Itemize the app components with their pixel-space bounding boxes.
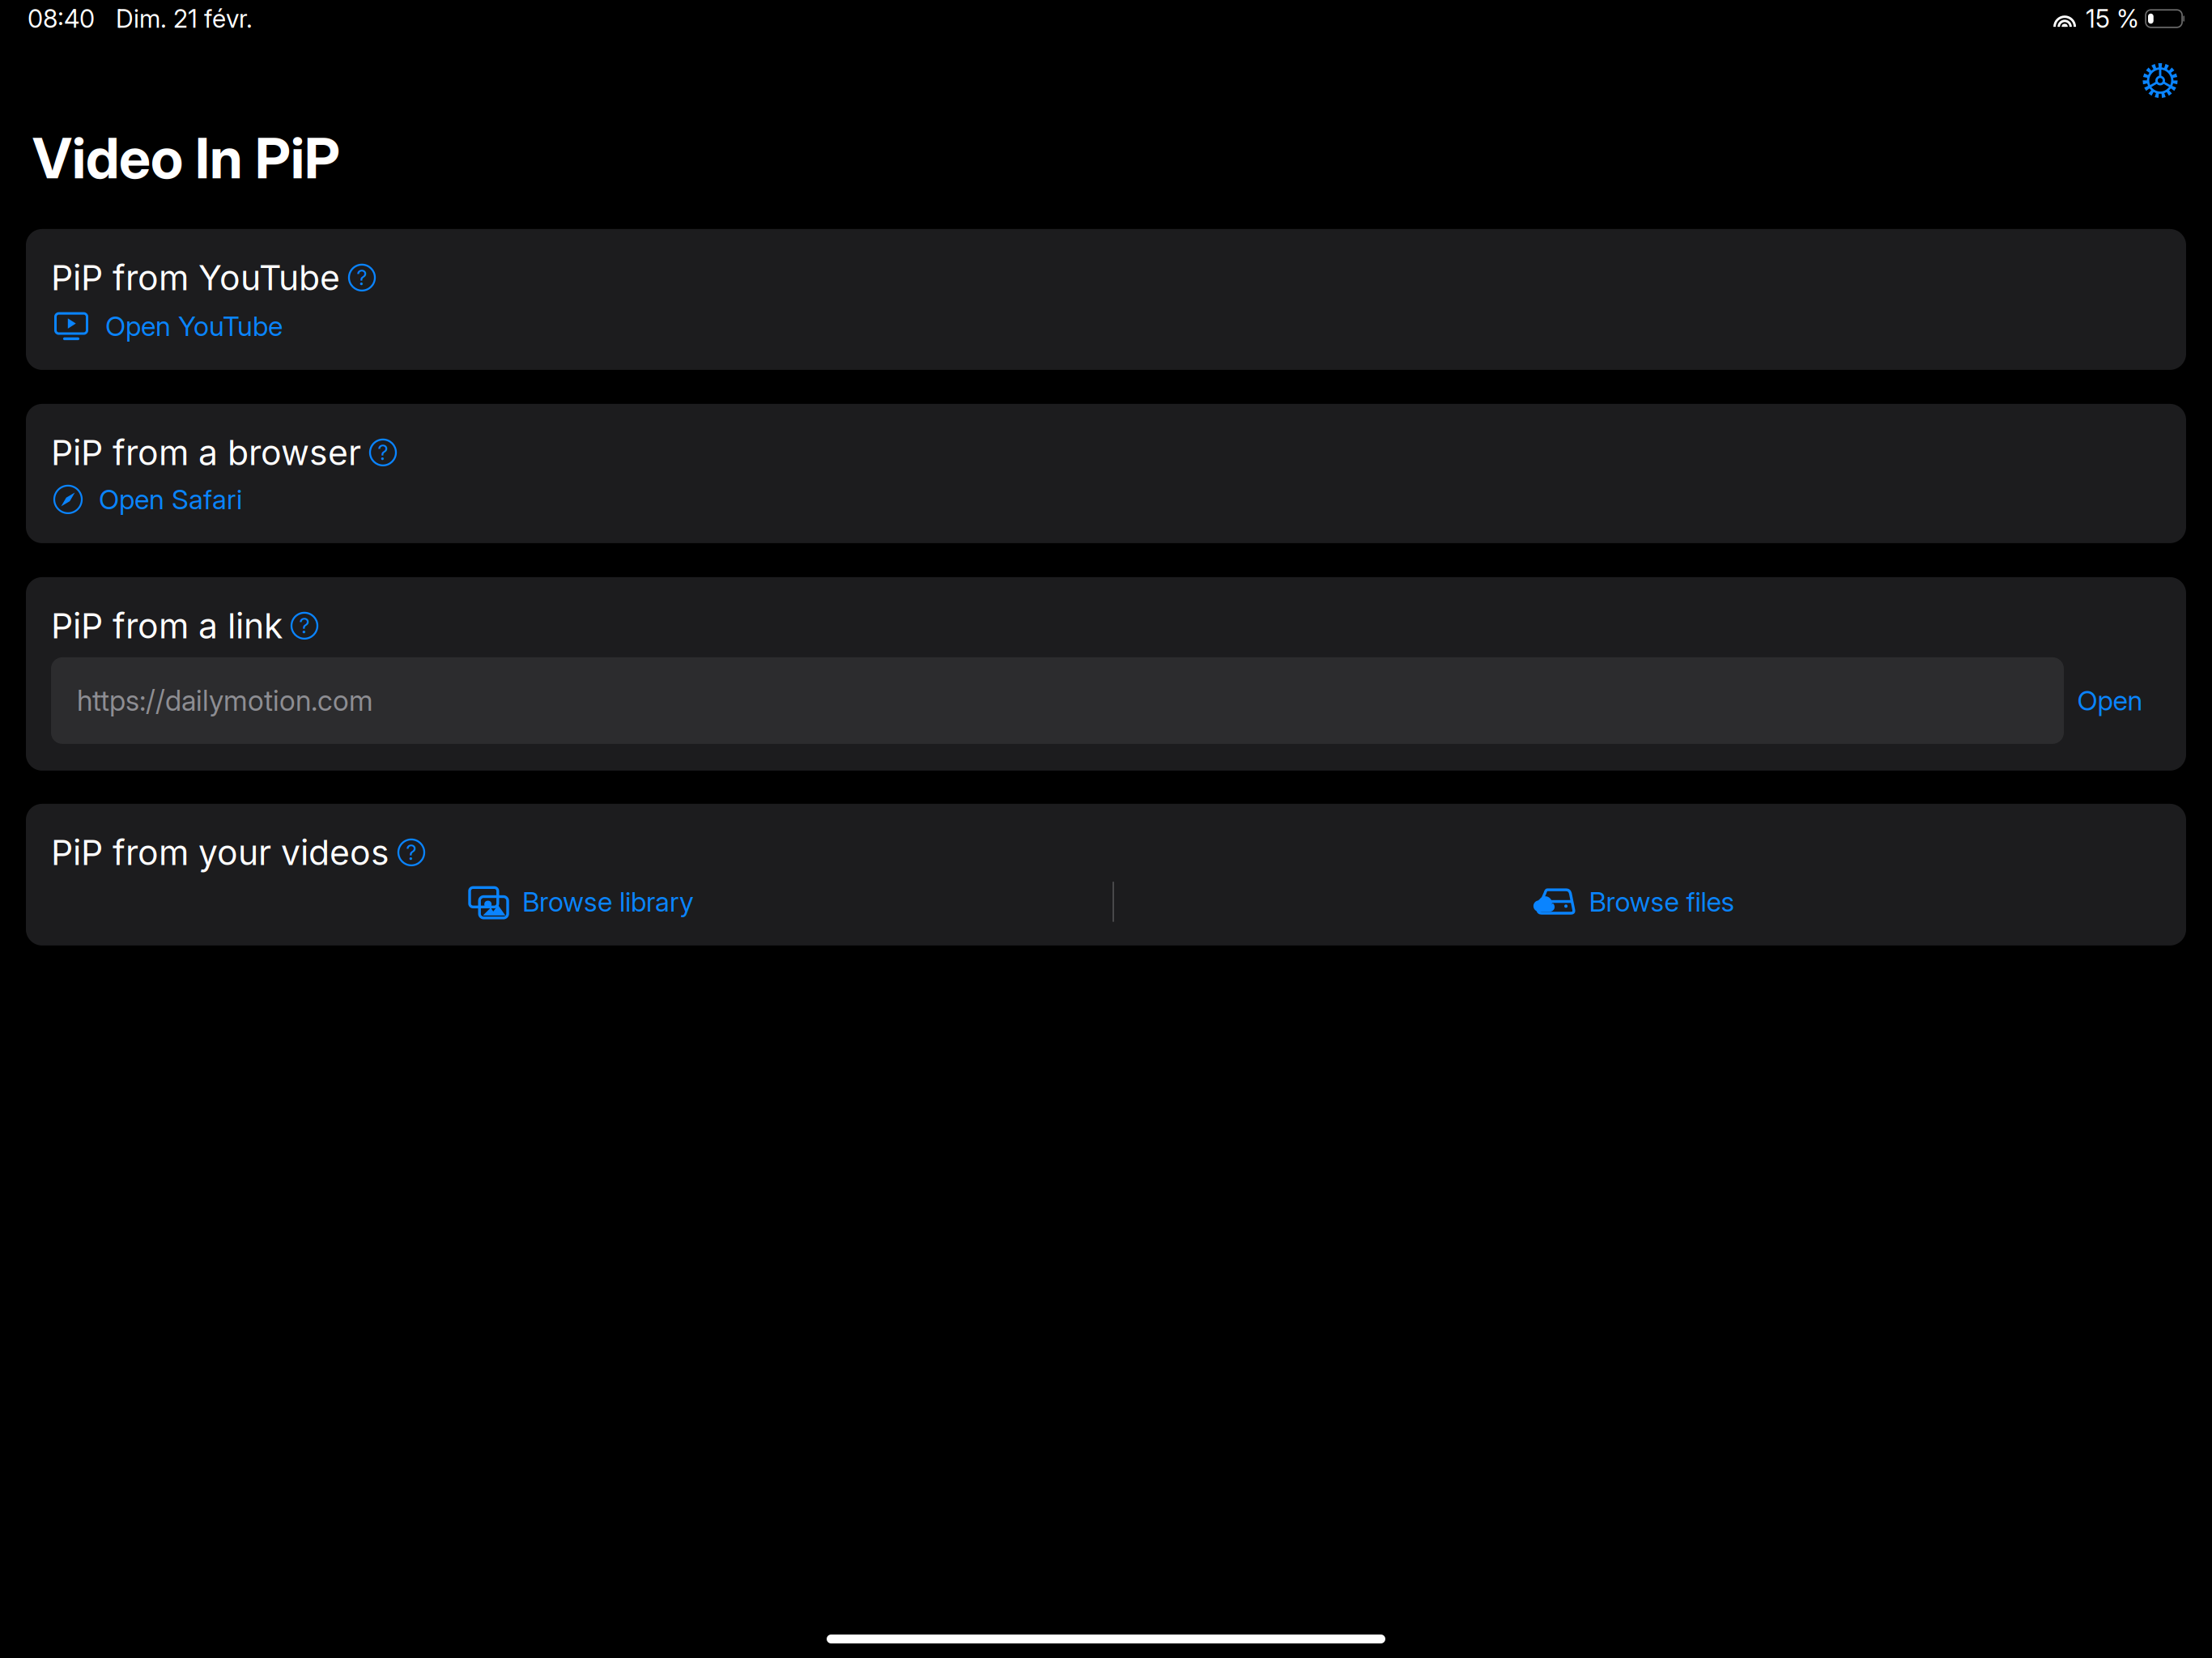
staticText: 08:40 xyxy=(28,4,95,34)
button[interactable]: Open Safari xyxy=(51,481,242,518)
staticText: PiP from your videos xyxy=(51,832,389,873)
button[interactable]: Browse library xyxy=(51,878,1112,925)
staticText: PiP from YouTube xyxy=(51,257,340,298)
staticText: Video In PiP xyxy=(32,124,340,192)
staticText: ? xyxy=(299,613,310,638)
staticText: Open Safari xyxy=(99,483,242,516)
button[interactable]: Browse files xyxy=(1114,878,2156,925)
staticText: ? xyxy=(357,265,367,290)
button[interactable]: Settings xyxy=(2125,45,2196,116)
staticText: https://dailymotion.com xyxy=(77,684,373,718)
staticText: Open YouTube xyxy=(105,310,283,342)
staticText: ? xyxy=(406,840,417,865)
staticText: PiP from a browser xyxy=(51,432,361,473)
staticText: Browse files xyxy=(1589,885,1735,918)
button[interactable]: Open xyxy=(2064,657,2156,744)
staticText: Browse library xyxy=(522,885,694,918)
staticText: 15 % xyxy=(2086,4,2139,34)
staticText: PiP from a link xyxy=(51,605,283,647)
staticText: Open xyxy=(2077,684,2143,717)
staticText: Dim. 21 févr. xyxy=(116,4,253,34)
staticText: ? xyxy=(378,440,388,465)
button[interactable]: Open YouTube xyxy=(51,308,283,345)
